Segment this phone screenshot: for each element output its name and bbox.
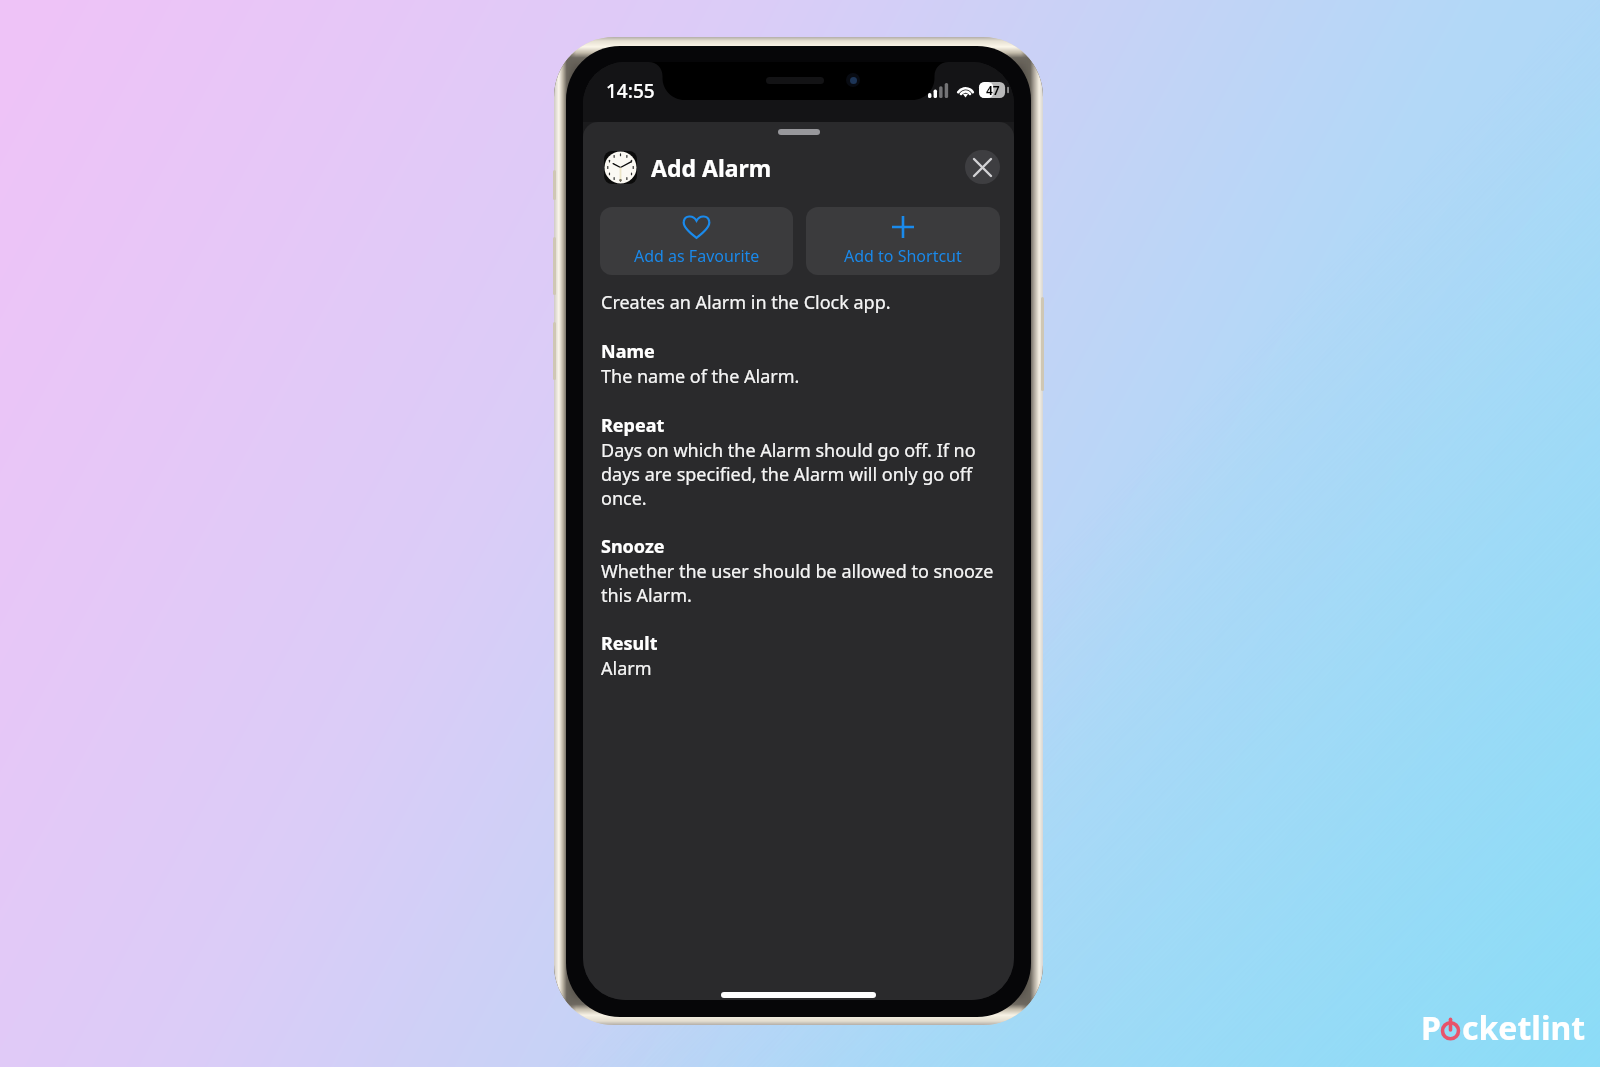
staticText: Add Alarm [651,152,772,183]
staticText: Result [601,631,658,656]
button[interactable]: Add as Favourite [600,207,793,275]
staticText: 47 [986,82,1000,98]
staticText: Snooze [601,534,665,559]
staticText: Repeat [601,413,665,438]
staticText: Add to Shortcut [844,245,962,267]
button[interactable]: Close [965,150,1000,184]
staticText: cketlint [1462,1006,1586,1050]
staticText: Alarm [601,656,652,681]
staticText: 14:55 [606,78,655,104]
staticText: Creates an Alarm in the Clock app. [601,290,891,315]
staticText: Add as Favourite [634,245,760,267]
staticText: Name [601,339,655,364]
staticText: Whether the user should be allowed to sn… [601,559,997,607]
staticText: Days on which the Alarm should go off. I… [601,438,997,510]
staticText: P [1421,1006,1441,1050]
button[interactable]: Drag handle [778,129,820,135]
staticText: The name of the Alarm. [601,364,800,389]
button[interactable]: Add to Shortcut [806,207,1000,275]
